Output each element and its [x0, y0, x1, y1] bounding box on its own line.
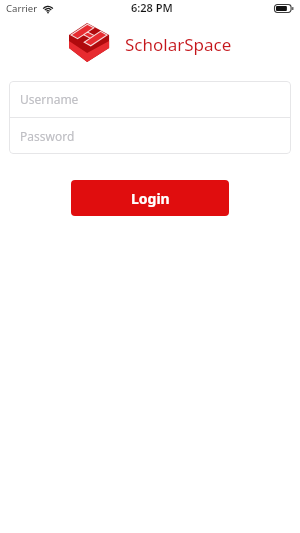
staticText: ScholarSpace: [125, 33, 232, 56]
button[interactable]: Username: [9, 81, 291, 117]
staticText: Password: [20, 128, 75, 144]
staticText: 6:28 PM: [131, 0, 173, 15]
staticText: Login: [131, 189, 170, 208]
staticText: Carrier: [6, 2, 38, 15]
button[interactable]: Login: [71, 180, 229, 216]
staticText: Username: [20, 91, 79, 107]
button[interactable]: Password: [9, 118, 291, 154]
